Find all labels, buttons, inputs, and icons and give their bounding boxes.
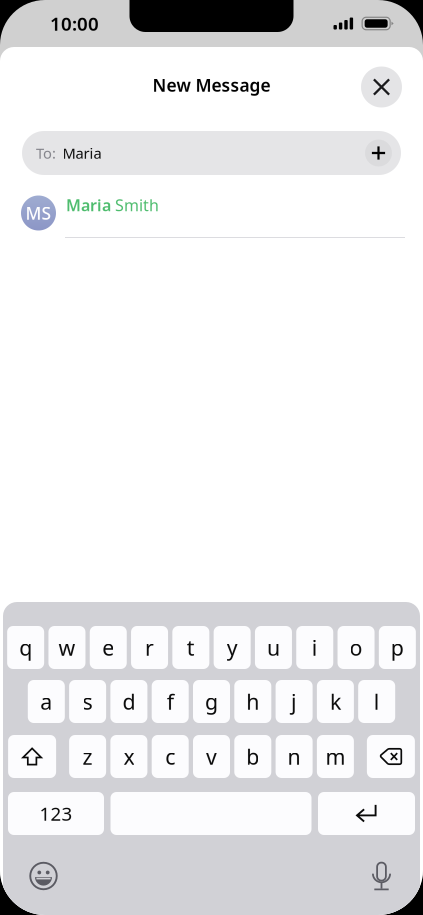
button[interactable]: q [7, 626, 44, 669]
staticText: g [205, 687, 218, 716]
staticText: d [122, 687, 135, 716]
staticText: x [123, 742, 134, 771]
button[interactable]: c [152, 735, 189, 778]
staticText: i [312, 633, 318, 662]
button[interactable]: l [358, 680, 395, 723]
button[interactable]: space [110, 792, 311, 835]
staticText: Maria [62, 143, 101, 163]
staticText: n [288, 742, 301, 771]
button[interactable]: z [69, 735, 106, 778]
button[interactable]: b [234, 735, 271, 778]
staticText: MS [25, 201, 51, 224]
staticText: o [350, 633, 363, 662]
button[interactable]: n [276, 735, 313, 778]
staticText: m [325, 742, 345, 771]
button[interactable]: j [276, 680, 313, 723]
button[interactable]: i [296, 626, 333, 669]
staticText: w [58, 633, 75, 662]
button[interactable]: a [28, 680, 65, 723]
button[interactable]: x [110, 735, 147, 778]
staticText: 10:00 [50, 11, 99, 36]
button[interactable]: h [234, 680, 271, 723]
staticText: q [19, 633, 32, 662]
button[interactable]: 123 [8, 792, 104, 835]
button[interactable]: Shift [8, 735, 56, 778]
button[interactable]: e [90, 626, 127, 669]
button[interactable]: p [379, 626, 416, 669]
staticText: 123 [39, 801, 72, 826]
staticText: z [83, 742, 93, 771]
button[interactable]: Return [318, 792, 415, 835]
button[interactable]: y [214, 626, 251, 669]
staticText: To: [36, 143, 56, 163]
staticText: k [330, 687, 341, 716]
button[interactable]: k [317, 680, 354, 723]
staticText: l [374, 687, 380, 716]
button[interactable]: d [110, 680, 147, 723]
staticText: j [291, 687, 297, 716]
button[interactable]: Delete [367, 735, 415, 778]
staticText: s [83, 687, 93, 716]
staticText: v [206, 742, 217, 771]
button[interactable]: Emoji [30, 862, 57, 889]
button[interactable]: s [69, 680, 106, 723]
staticText: u [267, 633, 280, 662]
button[interactable]: MS [0, 187, 423, 238]
button[interactable]: o [338, 626, 375, 669]
staticText: y [227, 633, 238, 662]
button[interactable]: u [255, 626, 292, 669]
button[interactable]: Close [361, 66, 402, 107]
staticText: New Message [152, 73, 270, 96]
staticText: a [40, 687, 52, 716]
button[interactable]: m [317, 735, 354, 778]
button[interactable]: Add contact [365, 139, 392, 166]
button[interactable]: t [172, 626, 209, 669]
staticText: h [246, 687, 259, 716]
button[interactable]: w [48, 626, 85, 669]
staticText: p [391, 633, 404, 662]
button[interactable]: v [193, 735, 230, 778]
button[interactable]: f [152, 680, 189, 723]
staticText: r [145, 633, 154, 662]
staticText: t [187, 633, 195, 662]
button[interactable]: Dictate [372, 862, 391, 890]
staticText: Maria Smith [66, 194, 159, 216]
staticText: f [167, 687, 174, 716]
staticText: c [165, 742, 175, 771]
button[interactable]: r [131, 626, 168, 669]
staticText: e [102, 633, 114, 662]
button[interactable]: g [193, 680, 230, 723]
staticText: b [246, 742, 259, 771]
